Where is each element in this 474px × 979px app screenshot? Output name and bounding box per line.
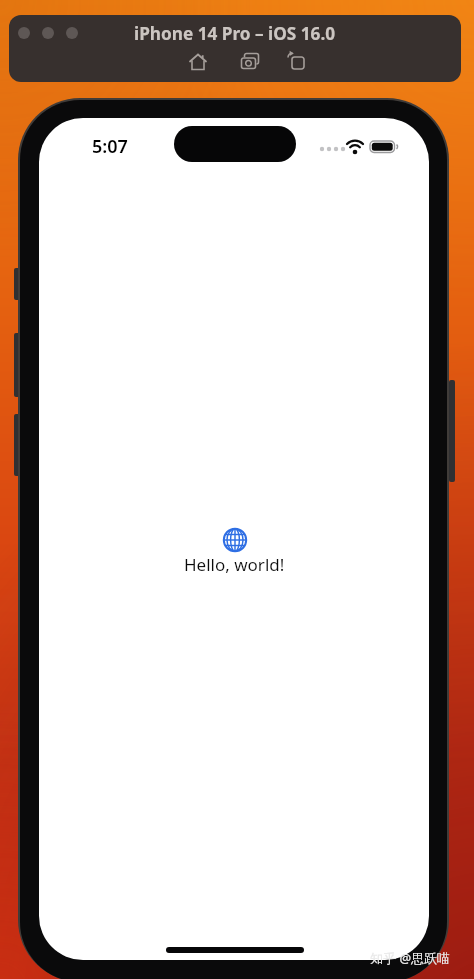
button[interactable] — [238, 50, 262, 74]
staticText: 知乎 @思跃喵 — [370, 949, 451, 967]
button[interactable] — [285, 50, 309, 74]
button[interactable] — [186, 50, 210, 74]
staticText: iPhone 14 Pro – iOS 16.0 — [134, 22, 336, 45]
staticText: Hello, world! — [184, 553, 285, 576]
staticText: 5:07 — [92, 134, 128, 158]
